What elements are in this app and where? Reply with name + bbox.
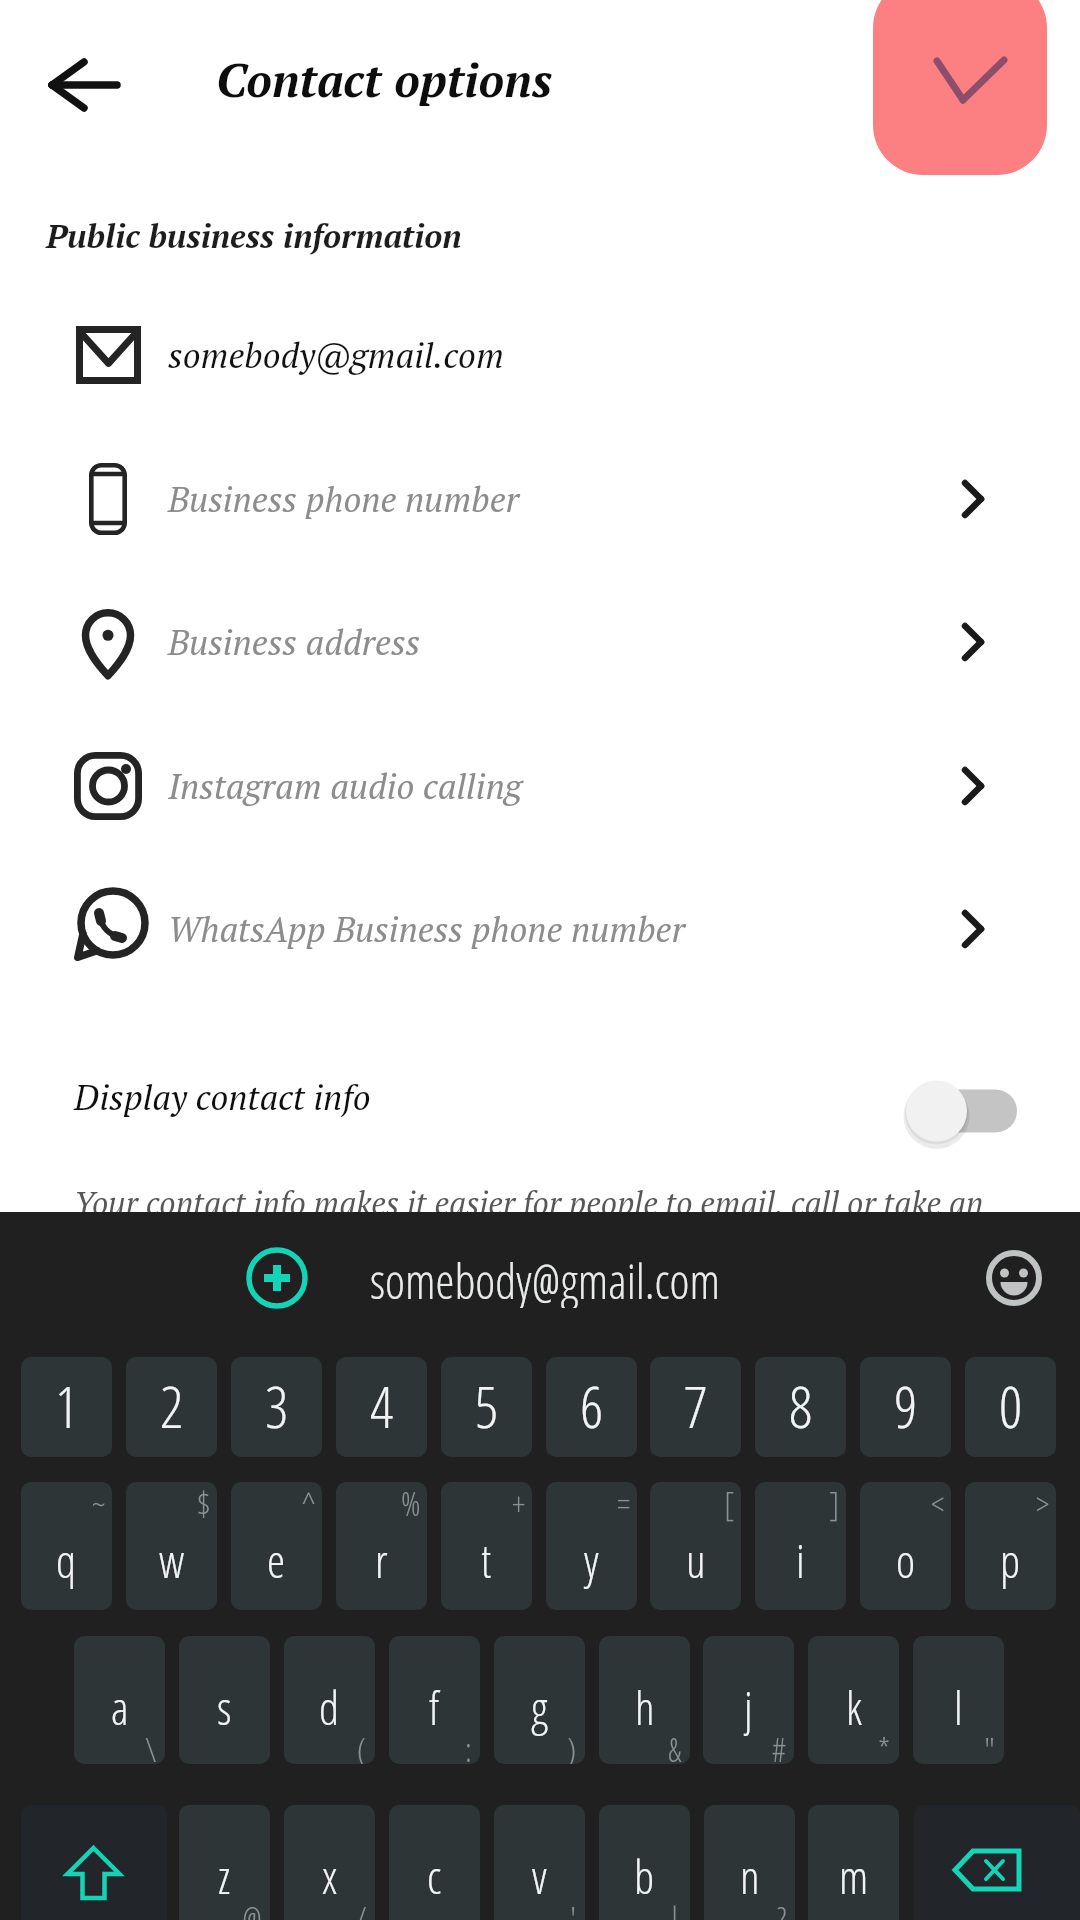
staticText: # [772,1727,786,1764]
button[interactable]: WhatsApp Business phone number [0,858,1080,1000]
staticText: s [217,1676,232,1739]
button[interactable]: ' [494,1805,585,1920]
staticText: @ [242,1896,262,1920]
button[interactable]: ) [494,1636,585,1764]
staticText: 1 [55,1366,79,1445]
button[interactable]: * [808,1636,899,1764]
staticText: 2 [160,1366,184,1445]
staticText: Your contact info makes it easier for pe… [74,1182,984,1224]
button[interactable]: & [599,1636,690,1764]
staticText: u [686,1529,706,1592]
staticText: ~ [92,1482,106,1526]
button[interactable]: ( [284,1636,375,1764]
staticText: ) [567,1727,577,1764]
button[interactable]: [ [650,1482,741,1610]
staticText: m [839,1845,869,1908]
staticText: a [111,1676,129,1739]
staticText: Public business information [46,214,462,258]
button[interactable]: ~ [21,1482,112,1610]
button[interactable]: Backspace [914,1805,1080,1920]
staticText: 4 [370,1366,394,1445]
button[interactable]: 9 [860,1357,951,1457]
staticText: $ [197,1482,211,1526]
button[interactable]: 7 [650,1357,741,1457]
button[interactable]: ] [755,1482,846,1610]
button[interactable]: ? [704,1805,795,1920]
staticText: p [1000,1529,1021,1592]
staticText: Business phone number [168,476,520,522]
button[interactable]: % [336,1482,427,1610]
staticText: Business address [168,619,421,665]
staticText: l [954,1676,963,1739]
button[interactable]: 6 [546,1357,637,1457]
staticText: n [740,1845,760,1908]
staticText: [ [724,1482,735,1526]
button[interactable]: 2 [126,1357,217,1457]
button[interactable]: Shift [21,1805,167,1920]
staticText: 0 [999,1366,1023,1445]
button[interactable]: 0 [965,1357,1056,1457]
staticText: b [634,1845,655,1908]
button[interactable]: - [389,1805,480,1920]
button[interactable]: " [913,1636,1004,1764]
staticText: % [401,1482,421,1526]
staticText: k [846,1676,862,1739]
staticText: Instagram audio calling [168,763,522,809]
button[interactable]: Instagram audio calling [0,715,1080,857]
button[interactable]: < [860,1482,951,1610]
staticText: t [481,1529,492,1592]
staticText: + [512,1482,526,1526]
button[interactable]: @ [179,1805,270,1920]
button[interactable]: # [703,1636,794,1764]
staticText: g [531,1676,548,1739]
staticText: * [878,1727,891,1764]
staticText: i [796,1529,805,1592]
button[interactable]: 1 [21,1357,112,1457]
button[interactable]: Add [247,1248,307,1308]
staticText: w [159,1529,185,1592]
staticText: < [931,1482,945,1526]
button[interactable]: / [284,1805,375,1920]
button[interactable]: + [441,1482,532,1610]
button[interactable]: 4 [336,1357,427,1457]
button[interactable]: 5 [441,1357,532,1457]
staticText: o [896,1529,916,1592]
staticText: z [218,1845,231,1908]
staticText: 9 [894,1366,918,1445]
staticText: ^ [302,1482,316,1526]
staticText: Contact options [216,48,553,110]
button[interactable]: . [808,1805,899,1920]
staticText: Display contact info [74,1074,371,1120]
button[interactable]: _ [179,1636,270,1764]
staticText: 8 [789,1366,813,1445]
button[interactable]: | [599,1805,690,1920]
button[interactable]: 3 [231,1357,322,1457]
button[interactable]: Confirm [873,0,1047,175]
staticText: 5 [475,1366,499,1445]
staticText: / [355,1896,367,1920]
button[interactable]: 8 [755,1357,846,1457]
button[interactable]: $ [126,1482,217,1610]
staticText: y [584,1529,599,1592]
button[interactable]: > [965,1482,1056,1610]
button[interactable]: Back [28,42,138,128]
button[interactable]: : [389,1636,480,1764]
staticText: : [465,1727,472,1764]
button[interactable]: \ [74,1636,165,1764]
button[interactable]: Display contact info [0,1060,1080,1134]
button[interactable]: Emoji [984,1248,1044,1308]
staticText: e [267,1529,286,1592]
button[interactable]: Business phone number [0,428,1080,570]
button[interactable]: Business address [0,571,1080,713]
staticText: h [635,1676,655,1739]
staticText: ( [357,1727,367,1764]
staticText: somebody@gmail.com [370,1248,720,1308]
staticText: & [668,1727,682,1764]
button[interactable]: = [546,1482,637,1610]
button[interactable]: somebody@gmail.com [0,284,1080,426]
button[interactable]: ^ [231,1482,322,1610]
staticText: \ [145,1727,157,1764]
staticText: r [375,1529,388,1592]
